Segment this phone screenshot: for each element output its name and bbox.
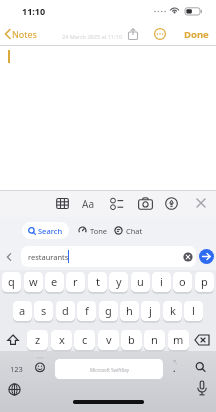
staticText: 24 March 2023 at 11:10 bbox=[62, 33, 123, 40]
staticText: g bbox=[105, 303, 112, 318]
button[interactable] bbox=[191, 330, 214, 351]
staticText: u bbox=[137, 274, 144, 289]
button[interactable] bbox=[195, 197, 207, 209]
button[interactable]: 123 bbox=[5, 359, 28, 380]
staticText: d bbox=[62, 303, 69, 318]
button[interactable] bbox=[7, 382, 22, 397]
button[interactable] bbox=[165, 197, 178, 210]
staticText: e bbox=[51, 274, 58, 289]
staticText: f bbox=[85, 303, 89, 318]
staticText: 123 bbox=[10, 364, 23, 374]
staticText: o bbox=[179, 274, 186, 289]
button[interactable]: q bbox=[2, 272, 21, 293]
staticText: 11:10 bbox=[22, 5, 46, 17]
staticText: Aa bbox=[82, 197, 94, 211]
staticText: Microsoft SwiftKey bbox=[90, 367, 129, 373]
button[interactable] bbox=[191, 359, 212, 380]
staticText: b bbox=[128, 332, 135, 347]
button[interactable]: z bbox=[27, 330, 48, 351]
button[interactable]: b bbox=[121, 330, 142, 351]
button[interactable]: ?!, bbox=[166, 359, 183, 380]
staticText: Notes bbox=[12, 28, 37, 40]
button[interactable] bbox=[31, 356, 49, 379]
staticText: p bbox=[201, 274, 208, 289]
button[interactable]: Microsoft SwiftKey bbox=[55, 359, 163, 380]
button[interactable] bbox=[2, 330, 24, 351]
button[interactable]: x bbox=[51, 330, 72, 351]
staticText: z bbox=[35, 332, 41, 347]
button[interactable]: Notes bbox=[4, 28, 37, 40]
staticText: ?!, bbox=[173, 359, 177, 364]
button[interactable]: Tone bbox=[76, 222, 110, 239]
staticText: k bbox=[170, 303, 176, 318]
button[interactable]: u bbox=[131, 272, 150, 293]
staticText: m bbox=[173, 332, 184, 347]
button[interactable]: p bbox=[195, 272, 214, 293]
button[interactable]: g bbox=[99, 301, 118, 322]
button[interactable]: l bbox=[184, 301, 203, 322]
button[interactable]: s bbox=[34, 301, 53, 322]
staticText: h bbox=[126, 303, 133, 318]
staticText: y bbox=[116, 274, 122, 289]
staticText: x bbox=[59, 332, 65, 347]
button[interactable]: n bbox=[144, 330, 165, 351]
button[interactable]: Chat bbox=[112, 222, 145, 239]
button[interactable]: t bbox=[88, 272, 107, 293]
staticText: n bbox=[151, 332, 158, 347]
staticText: s bbox=[41, 303, 47, 318]
button[interactable]: Done bbox=[184, 28, 209, 41]
button[interactable] bbox=[154, 28, 166, 40]
button[interactable]: o bbox=[173, 272, 192, 293]
button[interactable]: a bbox=[13, 301, 32, 322]
staticText: r bbox=[73, 274, 78, 289]
staticText: i bbox=[160, 274, 163, 289]
staticText: q bbox=[8, 274, 15, 289]
button[interactable]: Aa bbox=[82, 190, 94, 217]
button[interactable]: Search bbox=[22, 222, 69, 239]
button[interactable]: f bbox=[77, 301, 96, 322]
button[interactable] bbox=[56, 197, 69, 210]
staticText: Chat bbox=[126, 226, 143, 236]
button[interactable] bbox=[195, 380, 209, 398]
staticText: restaurants bbox=[28, 252, 69, 262]
staticText: v bbox=[106, 332, 112, 347]
button[interactable]: v bbox=[98, 330, 119, 351]
staticText: Tone bbox=[90, 226, 108, 236]
staticText: Search bbox=[38, 226, 63, 236]
button[interactable]: j bbox=[141, 301, 160, 322]
button[interactable]: m bbox=[168, 330, 189, 351]
staticText: j bbox=[149, 303, 152, 318]
staticText: a bbox=[19, 303, 26, 318]
staticText: . bbox=[173, 362, 176, 374]
button[interactable]: r bbox=[66, 272, 85, 293]
button[interactable]: e bbox=[45, 272, 64, 293]
staticText: l bbox=[192, 303, 195, 318]
button[interactable]: c bbox=[74, 330, 95, 351]
button[interactable]: w bbox=[24, 272, 43, 293]
button[interactable]: y bbox=[109, 272, 128, 293]
staticText: c bbox=[82, 332, 88, 347]
staticText: w bbox=[29, 274, 38, 289]
button[interactable]: restaurants bbox=[21, 246, 196, 267]
button[interactable] bbox=[110, 197, 124, 211]
button[interactable] bbox=[127, 28, 139, 40]
button[interactable] bbox=[4, 251, 14, 263]
staticText: t bbox=[96, 274, 100, 289]
button[interactable] bbox=[199, 249, 214, 264]
button[interactable]: k bbox=[163, 301, 182, 322]
button[interactable] bbox=[138, 197, 153, 210]
button[interactable]: i bbox=[152, 272, 171, 293]
button[interactable]: d bbox=[56, 301, 75, 322]
button[interactable]: h bbox=[120, 301, 139, 322]
